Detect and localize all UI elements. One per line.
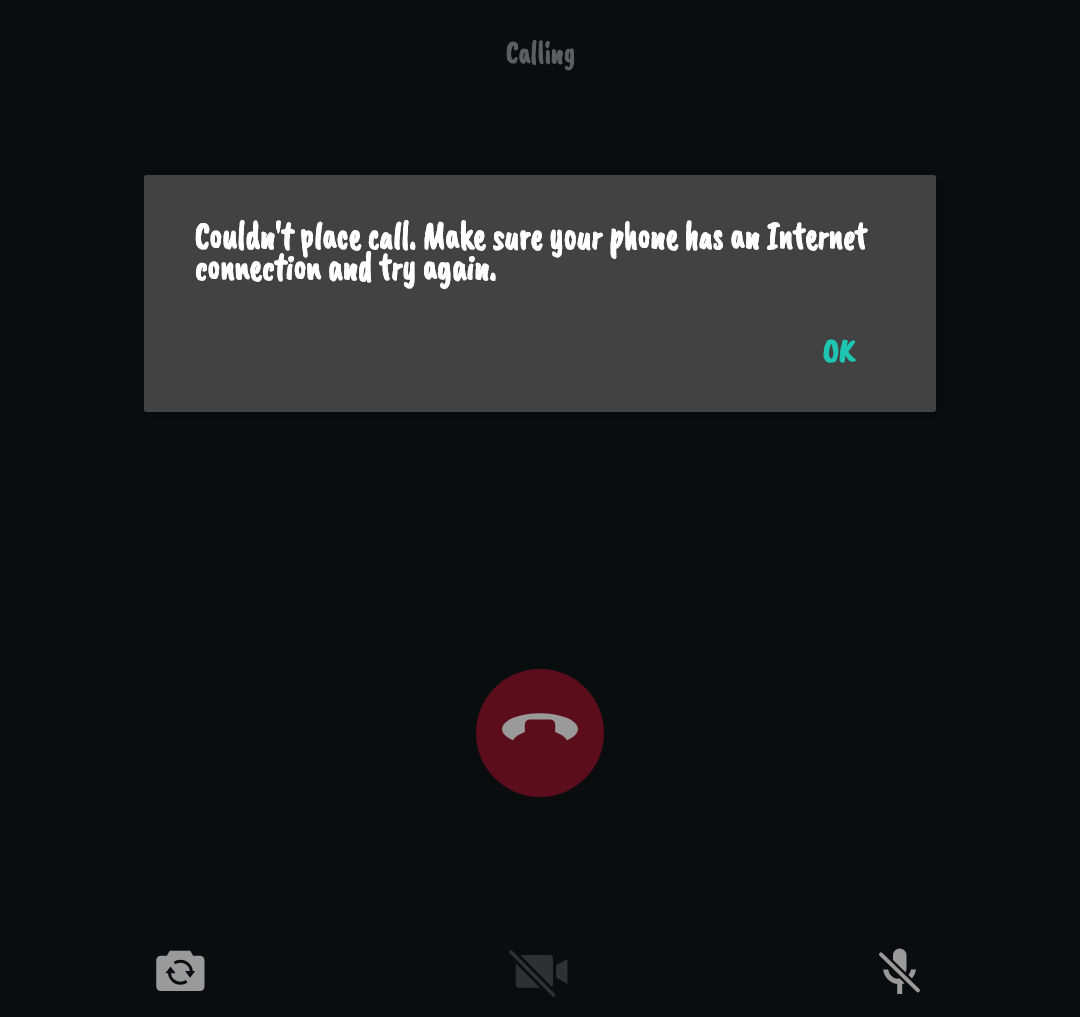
button[interactable]: Unmute microphone xyxy=(867,939,931,1003)
staticText: Couldn't place call. Make sure your phon… xyxy=(195,211,896,291)
button[interactable]: Turn camera on xyxy=(508,939,572,1003)
staticText: Calling xyxy=(506,31,575,73)
button[interactable]: Switch camera xyxy=(148,939,212,1003)
staticText: Calling xyxy=(506,31,575,73)
staticText: Couldn't place call. Make sure your phon… xyxy=(195,211,896,291)
button[interactable]: End call xyxy=(476,669,604,797)
staticText: OK xyxy=(823,329,856,371)
button[interactable]: OK xyxy=(795,315,884,385)
staticText: OK xyxy=(823,329,856,371)
